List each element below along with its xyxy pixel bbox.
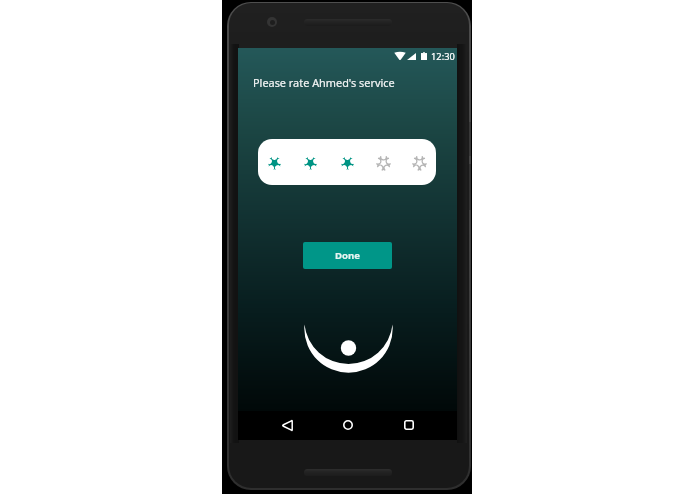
button[interactable]: Home — [336, 413, 360, 437]
button[interactable]: Done — [303, 242, 392, 269]
staticText: 12:30 — [431, 50, 455, 63]
staticText: Done — [335, 249, 360, 262]
button[interactable] — [258, 139, 436, 185]
button[interactable]: Back — [275, 413, 299, 437]
staticText: Please rate Ahmed's service — [253, 75, 395, 90]
button[interactable]: Recent apps — [397, 413, 421, 437]
